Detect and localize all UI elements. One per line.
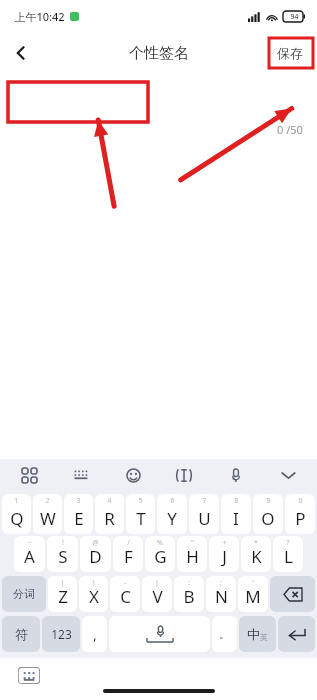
staticText: 2 [45,496,50,506]
staticText: Z [58,585,68,608]
staticText: G [154,545,167,568]
button[interactable]: 保存 [277,45,303,61]
staticText: M [245,585,261,608]
button[interactable]: Backspace [270,576,315,612]
button[interactable]: Enter [278,616,315,652]
staticText: - [124,578,127,588]
button[interactable]: " [177,536,207,572]
staticText: Q [10,507,24,530]
button[interactable]: Space [109,616,210,652]
staticText: 4 [107,496,112,506]
button[interactable]: 0 [285,494,315,534]
button[interactable]: Text edit [169,460,199,490]
button[interactable]: - [110,576,140,612]
button[interactable]: ( [48,576,77,612]
staticText: W [40,507,56,530]
button[interactable]: | [142,576,172,612]
staticText: U [198,507,211,530]
button[interactable]: 3 [64,494,93,534]
staticText: 9 [266,496,271,506]
staticText: 符 [15,626,28,642]
staticText: 8 [234,496,239,506]
button[interactable]: 5 [126,494,155,534]
button[interactable]: Apps [14,460,44,490]
button[interactable]: ) [79,576,108,612]
staticText: : [188,578,190,588]
staticText: ' [252,578,254,588]
staticText: C [120,585,131,608]
staticText: | [155,578,159,588]
staticText: 7 [202,496,207,506]
button[interactable]: Hide keyboard [273,460,303,490]
button[interactable]: + [209,536,239,572]
button[interactable]: / [113,536,143,572]
staticText: ~ [27,538,32,548]
staticText: B [183,585,195,608]
button[interactable]: Emoji [118,460,148,490]
staticText: ) [92,578,95,588]
button[interactable]: 9 [253,494,283,534]
staticText: N [215,585,228,608]
staticText: D [89,545,102,568]
button[interactable]: ~ [14,536,45,572]
staticText: 3 [76,496,81,506]
button[interactable]: ; [206,576,236,612]
button[interactable]: ? [273,536,303,572]
staticText: 中 [247,626,260,642]
button[interactable]: 6 [157,494,187,534]
staticText: O [261,507,275,530]
staticText: K [251,545,262,568]
button[interactable]: 7 [189,494,219,534]
staticText: F [124,545,133,568]
button[interactable]: * [241,536,271,572]
staticText: , [93,625,97,644]
staticText: T [136,507,146,530]
staticText: S [58,545,68,568]
staticText: 123 [51,626,72,642]
button[interactable]: 2 [33,494,62,534]
button[interactable]: % [145,536,175,572]
staticText: R [104,507,115,530]
staticText: X [89,585,99,608]
staticText: 。 [219,627,230,641]
button[interactable]: Back [0,32,42,74]
staticText: " [191,538,194,548]
button[interactable]: : [174,576,204,612]
staticText: A [24,545,35,568]
button[interactable]: Switch keyboard [18,667,40,684]
button[interactable]: 符 [2,616,40,652]
button[interactable]: , [82,616,107,652]
button[interactable]: Voice input [221,460,251,490]
staticText: ? [286,538,290,548]
button[interactable]: Chinese English [239,616,276,652]
staticText: + [222,538,227,548]
button[interactable]: 4 [95,494,124,534]
staticText: * [254,538,258,548]
staticText: 0 [298,496,303,506]
staticText: P [295,507,306,530]
button[interactable]: 123 [42,616,80,652]
staticText: @ [92,538,99,548]
staticText: H [186,545,199,568]
staticText: J [222,545,227,568]
button[interactable]: 8 [221,494,251,534]
button[interactable]: 分词 [2,576,46,612]
button[interactable]: 。 [212,616,237,652]
staticText: ( [61,578,64,588]
staticText: / [127,538,130,548]
button[interactable]: 1 [2,494,31,534]
staticText: % [157,538,163,548]
staticText: 5 [138,496,143,506]
staticText: I [233,507,239,530]
staticText: 分词 [13,587,35,601]
button[interactable]: ! [47,536,78,572]
button[interactable]: @ [80,536,111,572]
staticText: ; [220,578,222,588]
staticText: ! [62,538,64,548]
staticText: E [74,507,84,530]
button[interactable]: ' [238,576,268,612]
staticText: 个性签名 [129,44,189,63]
button[interactable]: Keyboard layout [66,460,96,490]
staticText: Y [167,507,177,530]
staticText: 上午10:42 [14,9,65,24]
